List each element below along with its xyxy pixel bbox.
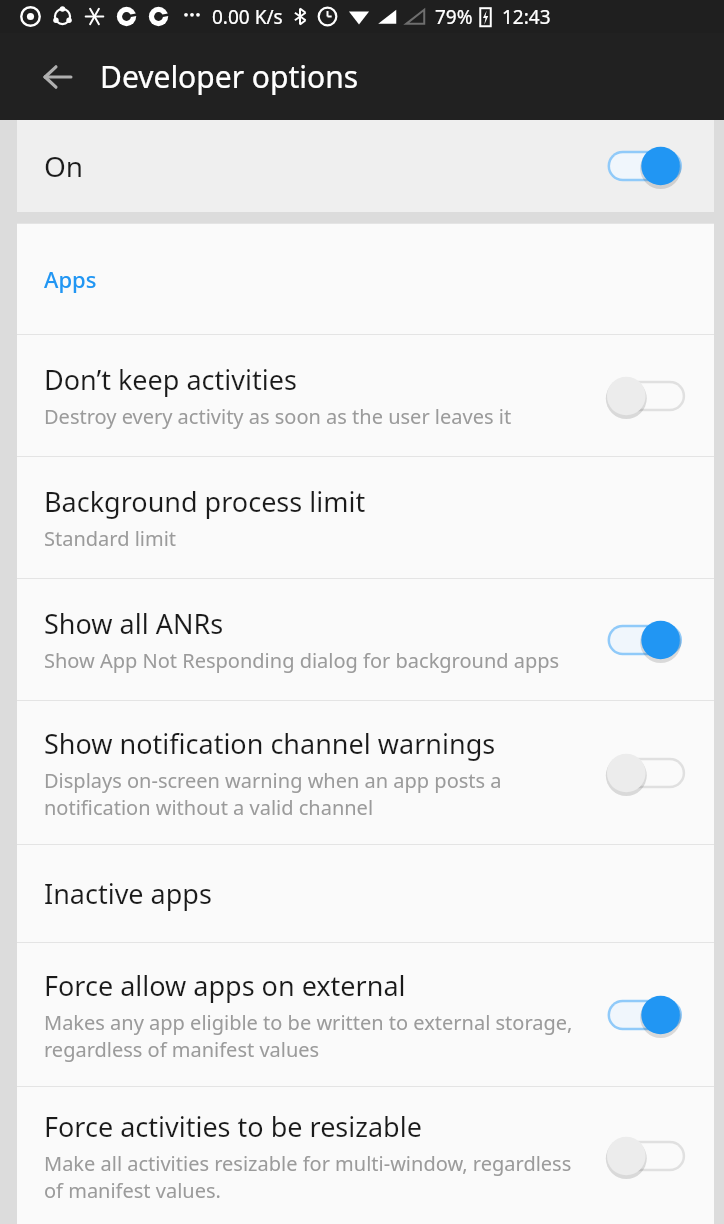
staticText: 12:43 bbox=[502, 4, 551, 30]
staticText: Destroy every activity as soon as the us… bbox=[44, 403, 512, 430]
staticText: Force activities to be resizable bbox=[44, 1108, 422, 1145]
staticText: Displays on-screen warning when an app p… bbox=[44, 767, 588, 821]
staticText: On bbox=[44, 147, 84, 185]
button[interactable]: Background process limit bbox=[17, 457, 714, 578]
button[interactable]: Show notification channel warnings bbox=[17, 701, 714, 844]
staticText: 79% bbox=[435, 4, 473, 30]
staticText: Show notification channel warnings bbox=[44, 725, 496, 762]
staticText: Make all activities resizable for multi-… bbox=[44, 1150, 588, 1204]
button[interactable]: Back bbox=[30, 49, 86, 105]
button[interactable]: On bbox=[17, 120, 714, 212]
staticText: Show all ANRs bbox=[44, 605, 224, 642]
button[interactable]: Force allow apps on external bbox=[17, 943, 714, 1086]
button[interactable]: Force activities to be resizable bbox=[17, 1087, 714, 1224]
staticText: Standard limit bbox=[44, 525, 177, 552]
button[interactable]: Inactive apps bbox=[17, 845, 714, 942]
staticText: 0.00 K/s bbox=[212, 4, 283, 30]
staticText: Force allow apps on external bbox=[44, 967, 406, 1004]
button[interactable]: Don’t keep activities bbox=[17, 335, 714, 456]
staticText: Inactive apps bbox=[44, 875, 212, 912]
button[interactable]: Show all ANRs bbox=[17, 579, 714, 700]
staticText: Makes any app eligible to be written to … bbox=[44, 1009, 588, 1063]
staticText: Don’t keep activities bbox=[44, 361, 297, 398]
staticText: Background process limit bbox=[44, 483, 366, 520]
staticText: Developer options bbox=[100, 56, 359, 97]
staticText: Show App Not Responding dialog for backg… bbox=[44, 647, 560, 674]
staticText: Apps bbox=[44, 264, 97, 294]
